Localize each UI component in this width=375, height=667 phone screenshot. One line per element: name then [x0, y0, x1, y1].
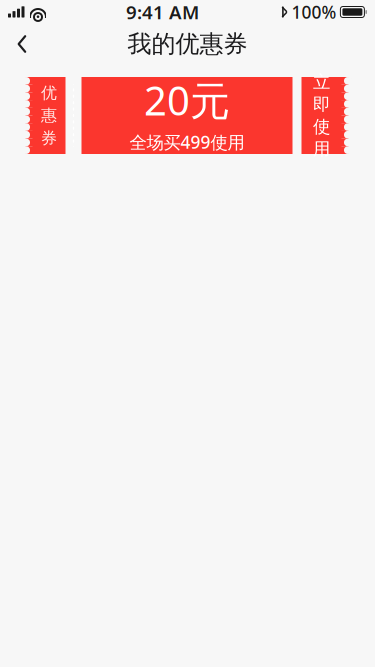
staticText: 使	[313, 116, 330, 137]
staticText: 券	[41, 128, 57, 148]
staticText: 9:41 AM	[126, 0, 199, 24]
staticText: 用	[313, 138, 330, 160]
staticText: 20元	[144, 73, 230, 126]
staticText: 立	[313, 71, 330, 93]
button[interactable]: 优	[4, 64, 370, 154]
staticText: 我的优惠券	[127, 29, 247, 59]
staticText: 100%	[291, 0, 336, 23]
staticText: 全场买499使用	[129, 131, 244, 154]
staticText: 惠	[41, 106, 57, 125]
button[interactable]: Back	[0, 24, 44, 64]
staticText: 即	[313, 94, 330, 115]
staticText: 优	[41, 83, 57, 103]
